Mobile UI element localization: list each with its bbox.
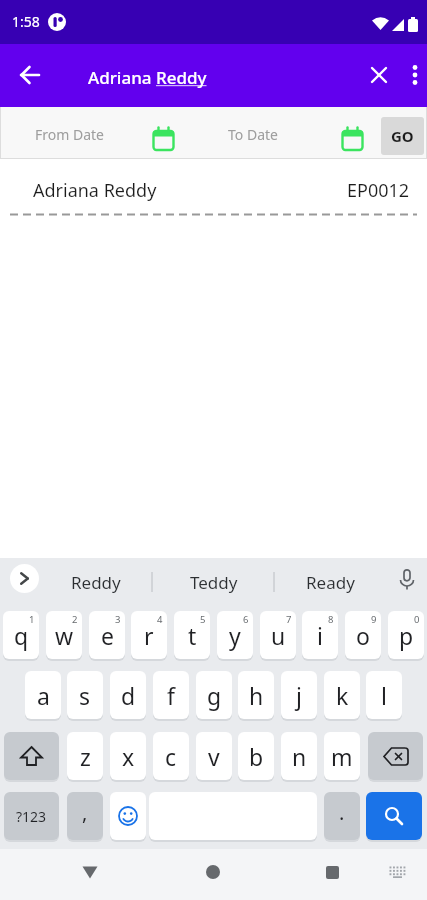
staticText: 6 (243, 613, 249, 626)
button[interactable]: k (324, 671, 360, 719)
staticText: Reddy (71, 571, 121, 594)
button[interactable]: r (131, 611, 167, 659)
button[interactable] (368, 732, 423, 780)
button[interactable]: e (89, 611, 125, 659)
staticText: m (331, 741, 353, 772)
staticText: 8 (328, 613, 334, 626)
button[interactable]: x (110, 732, 146, 780)
staticText: q (14, 620, 29, 651)
button[interactable] (382, 854, 412, 890)
button[interactable] (402, 54, 427, 96)
button[interactable] (358, 54, 400, 96)
staticText: p (399, 620, 414, 651)
staticText: 4 (157, 613, 163, 626)
staticText: n (292, 741, 307, 772)
staticText: z (80, 741, 91, 772)
button[interactable]: v (196, 732, 232, 780)
button[interactable]: f (153, 671, 189, 719)
button[interactable]: l (366, 671, 402, 719)
button[interactable]: ?123 (4, 792, 59, 840)
staticText: 5 (200, 613, 206, 626)
staticText: From Date (35, 125, 104, 144)
staticText: 1:58 (12, 12, 40, 31)
button[interactable]: Adriana Reddy (0, 159, 427, 216)
staticText: 0 (414, 613, 420, 626)
staticText: s (79, 680, 91, 711)
staticText: r (144, 620, 154, 651)
button[interactable] (366, 792, 422, 840)
staticText: k (336, 680, 349, 711)
staticText: e (101, 620, 114, 651)
staticText: b (249, 741, 264, 772)
button[interactable]: m (324, 732, 360, 780)
button[interactable]: z (67, 732, 103, 780)
staticText: 3 (115, 613, 121, 626)
staticText: v (208, 741, 220, 772)
staticText: l (381, 680, 387, 711)
staticText: d (121, 680, 136, 711)
staticText: Adriana Reddy (88, 66, 207, 89)
button[interactable]: y (217, 611, 253, 659)
button[interactable]: i (302, 611, 338, 659)
button[interactable]: GO (381, 117, 424, 155)
button[interactable]: h (238, 671, 274, 719)
staticText: 2 (72, 613, 78, 626)
button[interactable]: Ready (286, 558, 374, 606)
staticText: g (207, 680, 222, 711)
button[interactable] (141, 121, 185, 157)
button[interactable]: o (345, 611, 381, 659)
button[interactable] (4, 732, 59, 780)
staticText: 7 (286, 613, 292, 626)
button[interactable] (110, 792, 146, 840)
button[interactable]: q (3, 611, 39, 659)
button[interactable]: Teddy (166, 558, 261, 606)
staticText: f (167, 680, 175, 711)
button[interactable] (191, 850, 235, 894)
staticText: 9 (371, 613, 377, 626)
button[interactable] (392, 564, 422, 596)
staticText: i (317, 620, 323, 651)
staticText: Ready (306, 571, 355, 594)
button[interactable]: Reddy (56, 558, 136, 606)
button[interactable]: w (46, 611, 82, 659)
button[interactable]: d (110, 671, 146, 719)
staticText: Teddy (190, 571, 238, 594)
button[interactable]: j (281, 671, 317, 719)
button[interactable]: c (153, 732, 189, 780)
button[interactable] (330, 121, 374, 157)
staticText: 1 (29, 613, 35, 626)
staticText: GO (391, 126, 414, 146)
button[interactable]: . (324, 792, 360, 840)
staticText: o (356, 620, 370, 651)
staticText: x (122, 741, 135, 772)
button[interactable]: a (25, 671, 61, 719)
button[interactable] (10, 564, 39, 593)
button[interactable]: n (281, 732, 317, 780)
staticText: j (296, 680, 302, 711)
button[interactable]: s (67, 671, 103, 719)
staticText: t (188, 620, 197, 651)
staticText: h (249, 680, 264, 711)
button[interactable]: , (67, 792, 103, 840)
staticText: y (229, 620, 241, 651)
staticText: To Date (228, 125, 278, 144)
button[interactable]: u (260, 611, 296, 659)
staticText: EP0012 (347, 178, 410, 203)
staticText: c (165, 741, 177, 772)
button[interactable] (310, 850, 354, 894)
staticText: . (339, 799, 345, 826)
button[interactable] (8, 53, 52, 97)
staticText: ?123 (16, 807, 47, 826)
staticText: u (271, 620, 286, 651)
button[interactable] (68, 850, 112, 894)
button[interactable]: b (238, 732, 274, 780)
staticText: Adriana Reddy (33, 178, 157, 203)
staticText: a (37, 680, 50, 711)
button[interactable]: t (174, 611, 210, 659)
button[interactable]: g (196, 671, 232, 719)
button[interactable]: p (388, 611, 424, 659)
staticText: w (55, 620, 74, 651)
staticText: , (82, 799, 88, 826)
